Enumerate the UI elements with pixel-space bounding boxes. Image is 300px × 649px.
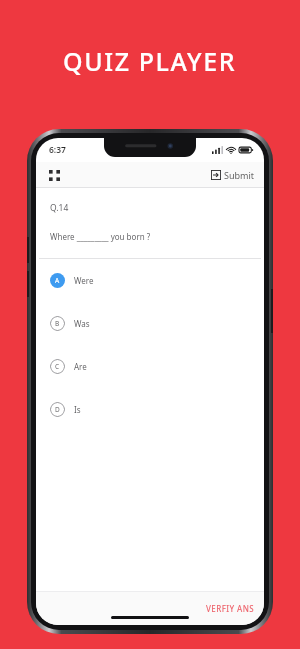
- button[interactable]: A: [36, 259, 264, 302]
- button[interactable]: C: [36, 345, 264, 388]
- staticText: Are: [74, 361, 87, 372]
- staticText: Q.14: [50, 202, 69, 214]
- button[interactable]: VERFIY ANS: [203, 599, 258, 618]
- staticText: Where _________ you born ?: [50, 231, 151, 242]
- staticText: Submit: [224, 169, 255, 181]
- staticText: D: [55, 405, 60, 414]
- staticText: Were: [74, 275, 94, 286]
- staticText: A: [55, 276, 60, 285]
- staticText: Is: [74, 404, 81, 415]
- staticText: Was: [74, 318, 90, 329]
- staticText: 6:37: [49, 144, 66, 156]
- button[interactable]: D: [36, 388, 264, 431]
- button[interactable]: Question grid: [44, 165, 64, 185]
- staticText: C: [55, 362, 60, 371]
- staticText: VERFIY ANS: [206, 603, 255, 614]
- staticText: QUIZ PLAYER: [63, 44, 237, 78]
- button[interactable]: Submit: [209, 166, 257, 184]
- button[interactable]: B: [36, 302, 264, 345]
- staticText: B: [55, 319, 60, 328]
